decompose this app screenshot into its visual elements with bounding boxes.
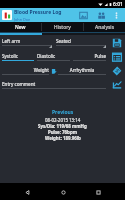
button[interactable]: Weight — [2, 67, 49, 75]
staticText: Weight: 189.96lb — [45, 135, 81, 141]
button[interactable]: Left arm — [2, 38, 52, 48]
staticText: Diastolic — [37, 53, 70, 59]
staticText: Weight — [2, 67, 49, 73]
button[interactable]: Tags — [108, 64, 125, 78]
staticText: 6:01 — [113, 1, 123, 8]
staticText: Pulse: 76bpm — [48, 129, 77, 135]
staticText: Systolic — [2, 53, 34, 59]
button[interactable]: Arrhythmia — [58, 67, 106, 75]
button[interactable]: Measurement list — [108, 50, 125, 64]
staticText: New — [15, 24, 26, 31]
staticText: Left arm — [2, 38, 52, 44]
button[interactable]: Entry comment — [2, 81, 106, 89]
button[interactable]: Diastolic — [37, 53, 70, 61]
button[interactable]: Home — [55, 184, 71, 200]
staticText: Seated — [56, 38, 106, 44]
staticText: 08-02-2015 13:14 — [45, 117, 81, 123]
button[interactable]: Photo — [75, 9, 92, 21]
button[interactable]: Weight unit — [50, 67, 58, 75]
button[interactable]: New — [0, 22, 41, 32]
staticText: History — [54, 24, 71, 31]
button[interactable]: History — [42, 22, 83, 32]
staticText: Entry comment — [2, 81, 106, 87]
button[interactable]: More options — [110, 9, 123, 21]
staticText: Previous — [52, 109, 74, 116]
button[interactable]: Switch user — [92, 9, 110, 21]
staticText: Arrhythmia — [58, 67, 106, 73]
button[interactable]: Save — [108, 36, 125, 50]
button[interactable]: Analysis — [84, 22, 125, 32]
button[interactable]: Pulse — [73, 53, 106, 61]
staticText: John Doe — [14, 17, 31, 22]
staticText: Pulse — [73, 53, 106, 59]
button[interactable]: Systolic — [2, 53, 34, 61]
button[interactable]: Back — [19, 184, 35, 200]
staticText: Analysis — [95, 24, 115, 31]
staticText: Blood Pressure Log — [14, 9, 62, 16]
button[interactable]: Recents — [90, 184, 106, 200]
staticText: Sys/Dia: 119/68 mmHg — [38, 123, 87, 129]
button[interactable]: Seated — [56, 38, 106, 48]
button[interactable]: App icon — [2, 10, 12, 20]
button[interactable]: Chart — [108, 78, 125, 92]
